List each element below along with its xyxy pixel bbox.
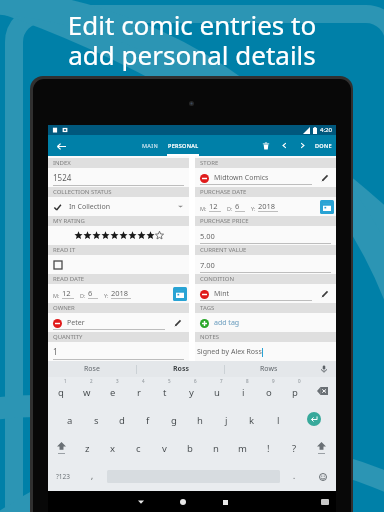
- staticText: 6: [235, 201, 240, 211]
- button[interactable]: Recents: [216, 493, 234, 511]
- staticText: QUANTITY: [53, 333, 83, 341]
- button[interactable]: 3: [100, 377, 126, 405]
- button[interactable]: In Collection: [48, 197, 189, 216]
- button[interactable]: 4: [126, 377, 152, 405]
- staticText: COLLECTION STATUS: [53, 188, 112, 196]
- button[interactable]: Voice input: [312, 361, 336, 377]
- staticText: Signed by Alex Ross: [197, 347, 262, 357]
- button[interactable]: v: [151, 433, 177, 462]
- staticText: 2018: [111, 288, 129, 298]
- button[interactable]: ,: [77, 462, 107, 491]
- button[interactable]: 9: [256, 377, 282, 405]
- button[interactable]: ?: [281, 433, 307, 462]
- button[interactable]: k: [239, 405, 265, 433]
- button[interactable]: Shift: [48, 433, 75, 462]
- staticText: j: [225, 414, 228, 427]
- button[interactable]: DONE: [311, 135, 336, 156]
- staticText: y: [189, 386, 194, 399]
- button[interactable]: g: [161, 405, 187, 433]
- staticText: t: [163, 386, 167, 399]
- staticText: 5: [168, 378, 171, 384]
- staticText: 4: [142, 378, 145, 384]
- button[interactable]: s: [83, 405, 109, 433]
- button[interactable]: add tag: [200, 318, 240, 328]
- button[interactable]: Delete: [257, 135, 275, 156]
- staticText: p: [292, 386, 298, 399]
- staticText: Rows: [260, 364, 278, 374]
- button[interactable]: Caps lock: [307, 433, 336, 462]
- button[interactable]: l: [265, 405, 291, 433]
- button[interactable]: a: [57, 405, 83, 433]
- button[interactable]: MAIN: [134, 135, 166, 156]
- staticText: M:: [200, 205, 207, 212]
- button[interactable]: 6: [178, 377, 204, 405]
- button[interactable]: Keyboard: [318, 493, 332, 511]
- button[interactable]: c: [125, 433, 151, 462]
- button[interactable]: Enter: [291, 405, 336, 433]
- staticText: Rose: [84, 364, 100, 374]
- button[interactable]: Back: [54, 139, 68, 153]
- staticText: 6: [194, 378, 197, 384]
- button[interactable]: Backspace: [308, 377, 336, 405]
- button[interactable]: m: [229, 433, 255, 462]
- button[interactable]: Pick date: [173, 287, 187, 301]
- button[interactable]: 7: [204, 377, 230, 405]
- staticText: 1: [53, 346, 58, 357]
- button[interactable]: 0: [282, 377, 308, 405]
- staticText: o: [266, 386, 272, 399]
- staticText: r: [137, 386, 141, 399]
- button[interactable]: Edit owner: [172, 317, 184, 329]
- staticText: ,: [91, 470, 94, 481]
- staticText: 6: [88, 288, 93, 298]
- button[interactable]: Back: [132, 493, 150, 511]
- button[interactable]: Pick purchase date: [320, 200, 334, 214]
- staticText: q: [58, 386, 64, 399]
- staticText: STORE: [200, 159, 219, 167]
- staticText: 8: [246, 378, 249, 384]
- staticText: f: [146, 414, 150, 427]
- staticText: w: [83, 386, 91, 399]
- staticText: i: [242, 386, 245, 399]
- button[interactable]: 8: [230, 377, 256, 405]
- staticText: .: [293, 470, 296, 481]
- button[interactable]: Previous entry: [275, 135, 293, 156]
- button[interactable]: Edit store: [319, 172, 331, 184]
- staticText: Midtown Comics: [214, 173, 269, 183]
- staticText: s: [94, 414, 99, 427]
- button[interactable]: Edit condition: [319, 288, 331, 300]
- button[interactable]: 2: [74, 377, 100, 405]
- staticText: Mint: [214, 289, 230, 299]
- button[interactable]: b: [177, 433, 203, 462]
- button[interactable]: Rose: [48, 361, 136, 377]
- staticText: 2: [90, 378, 93, 384]
- button[interactable]: ?123: [48, 462, 77, 491]
- staticText: NOTES: [200, 333, 220, 341]
- button[interactable]: 1: [48, 377, 74, 405]
- button[interactable]: h: [187, 405, 213, 433]
- button[interactable]: j: [213, 405, 239, 433]
- staticText: n: [213, 442, 219, 455]
- staticText: h: [197, 414, 203, 427]
- staticText: 12: [209, 201, 218, 211]
- button[interactable]: Next entry: [293, 135, 311, 156]
- staticText: v: [162, 442, 167, 455]
- button[interactable]: n: [203, 433, 229, 462]
- button[interactable]: Home: [174, 493, 192, 511]
- button[interactable]: 5: [152, 377, 178, 405]
- staticText: DONE: [315, 142, 332, 149]
- staticText: PERSONAL: [168, 142, 199, 149]
- button[interactable]: [48, 255, 189, 274]
- button[interactable]: PERSONAL: [166, 135, 200, 156]
- button[interactable]: f: [135, 405, 161, 433]
- button[interactable]: Rows: [225, 361, 312, 377]
- button[interactable]: x: [100, 433, 125, 462]
- button[interactable]: d: [109, 405, 135, 433]
- button[interactable]: Ross: [137, 361, 224, 377]
- button[interactable]: !: [255, 433, 281, 462]
- button[interactable]: z: [75, 433, 100, 462]
- button[interactable]: Emoji: [309, 462, 336, 491]
- staticText: D:: [227, 205, 233, 212]
- staticText: !: [267, 442, 270, 455]
